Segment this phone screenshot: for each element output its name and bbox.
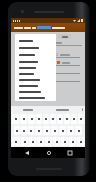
button[interactable] — [45, 137, 52, 146]
button[interactable] — [19, 77, 56, 83]
button[interactable]: More suggestions — [79, 106, 85, 113]
button[interactable] — [28, 114, 35, 124]
button[interactable] — [19, 83, 56, 89]
button[interactable] — [53, 137, 60, 146]
button[interactable] — [36, 114, 42, 124]
button[interactable] — [45, 106, 79, 113]
button[interactable] — [29, 137, 36, 146]
button[interactable] — [43, 126, 50, 135]
button[interactable] — [21, 126, 27, 135]
button[interactable] — [12, 114, 19, 124]
button[interactable] — [19, 89, 56, 95]
button[interactable]: Recent apps — [64, 147, 75, 158]
button[interactable] — [51, 126, 58, 135]
button[interactable] — [77, 137, 84, 146]
button[interactable] — [50, 114, 56, 124]
button[interactable] — [59, 126, 66, 135]
button[interactable] — [71, 148, 76, 157]
button[interactable] — [14, 126, 20, 135]
button[interactable]: Space — [35, 148, 70, 157]
button[interactable] — [35, 126, 42, 135]
button[interactable] — [21, 137, 28, 146]
button[interactable] — [19, 71, 56, 77]
button[interactable] — [78, 114, 84, 124]
button[interactable] — [58, 34, 71, 39]
button[interactable] — [19, 95, 56, 101]
button[interactable] — [69, 137, 76, 146]
button[interactable] — [37, 137, 44, 146]
button[interactable] — [43, 114, 49, 124]
button[interactable] — [20, 114, 27, 124]
button[interactable] — [19, 51, 56, 58]
button[interactable] — [44, 61, 82, 64]
button[interactable] — [19, 58, 56, 65]
button[interactable] — [64, 114, 70, 124]
button[interactable] — [19, 44, 56, 51]
button[interactable] — [61, 137, 68, 146]
button[interactable] — [75, 126, 82, 135]
button[interactable] — [44, 53, 82, 56]
button[interactable]: Back — [21, 147, 32, 158]
button[interactable] — [28, 69, 82, 72]
button[interactable] — [11, 106, 45, 113]
button[interactable] — [28, 77, 82, 80]
button[interactable] — [19, 37, 56, 44]
button[interactable] — [12, 137, 20, 146]
button[interactable] — [57, 114, 63, 124]
button[interactable] — [28, 126, 34, 135]
button[interactable] — [11, 23, 85, 32]
button[interactable]: Home — [43, 147, 54, 158]
button[interactable] — [22, 148, 27, 157]
button[interactable] — [71, 114, 77, 124]
button[interactable] — [19, 65, 56, 71]
button[interactable] — [67, 126, 74, 135]
button[interactable]: Voice input — [28, 148, 34, 157]
